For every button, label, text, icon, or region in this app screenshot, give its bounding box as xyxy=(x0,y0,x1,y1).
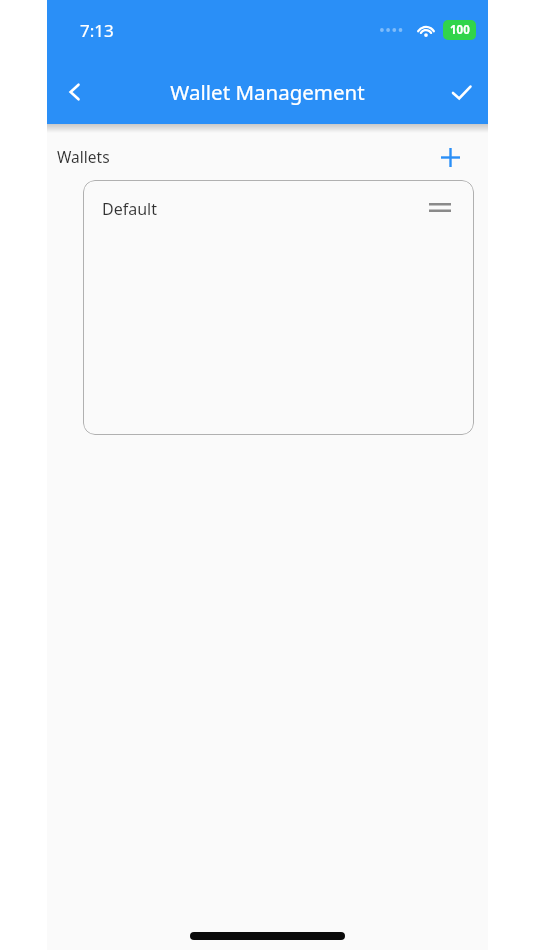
button[interactable]: Default xyxy=(83,180,474,435)
staticText: 7:13 xyxy=(80,19,114,42)
button[interactable]: Reorder wallet xyxy=(422,192,458,222)
staticText: Default xyxy=(102,198,157,220)
button[interactable]: Add wallet xyxy=(432,139,468,175)
button[interactable]: Back xyxy=(54,71,96,113)
staticText: Wallet Management xyxy=(170,78,365,106)
staticText: Wallets xyxy=(57,146,110,167)
staticText: 100 xyxy=(450,22,470,38)
button[interactable]: Confirm xyxy=(440,71,482,113)
